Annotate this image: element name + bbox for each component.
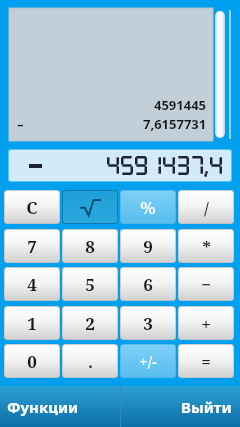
button[interactable]: Функции (0, 386, 120, 427)
button[interactable]: Square root (62, 190, 118, 224)
staticText: 9 (143, 235, 153, 258)
staticText: 2 (85, 312, 95, 335)
staticText: 4591445 (154, 96, 207, 114)
staticText: +/- (139, 351, 157, 371)
button[interactable]: Divide (178, 190, 234, 224)
staticText: 4 (27, 273, 37, 296)
button[interactable]: 6 (120, 267, 176, 301)
staticText: . (88, 350, 93, 373)
staticText: 7,6157731 (143, 115, 207, 133)
staticText: Функции (7, 397, 79, 417)
button[interactable]: 1 (4, 306, 60, 340)
button[interactable]: Clear (4, 190, 60, 224)
staticText: * (202, 235, 211, 258)
button[interactable]: Выйти (120, 386, 240, 427)
staticText: = (201, 350, 211, 373)
staticText: Выйти (181, 397, 232, 417)
button[interactable]: 5 (62, 267, 118, 301)
staticText: 7 (27, 235, 37, 258)
staticText: 3 (143, 312, 153, 335)
button[interactable]: Percent (120, 190, 176, 224)
button[interactable]: Add (178, 306, 234, 340)
staticText: – (17, 115, 24, 133)
button[interactable]: Decimal point (62, 344, 118, 378)
button[interactable]: Subtract (178, 267, 234, 301)
staticText: + (201, 312, 211, 335)
button[interactable]: 2 (62, 306, 118, 340)
staticText: 5 (85, 273, 95, 296)
button[interactable]: 8 (62, 229, 118, 263)
button[interactable]: 3 (120, 306, 176, 340)
staticText: 8 (85, 235, 95, 258)
button[interactable]: 0 (4, 344, 60, 378)
button[interactable]: 4 (4, 267, 60, 301)
button[interactable]: Equals (178, 344, 234, 378)
staticText: − (201, 273, 211, 296)
staticText: / (204, 196, 209, 219)
staticText: 0 (27, 350, 37, 373)
button[interactable]: 9 (120, 229, 176, 263)
button[interactable]: Multiply (178, 229, 234, 263)
staticText: C (26, 196, 38, 219)
staticText: 1 (27, 312, 37, 335)
staticText: 6 (143, 273, 153, 296)
button[interactable]: 7 (4, 229, 60, 263)
button[interactable]: Toggle sign (120, 344, 176, 378)
staticText: % (140, 196, 156, 219)
